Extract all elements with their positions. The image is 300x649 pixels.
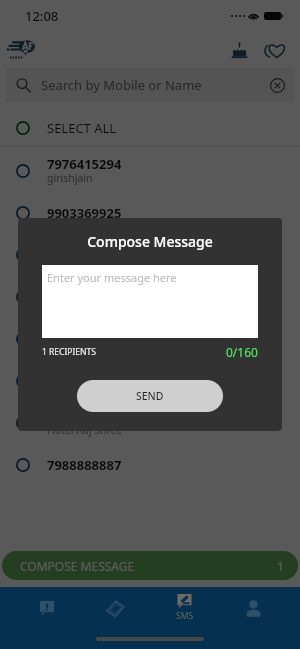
staticText: 9461016573 bbox=[47, 365, 122, 383]
button[interactable]: SMS bbox=[150, 587, 219, 629]
staticText: Tulsi Leaf bbox=[47, 381, 93, 395]
staticText: Search by Mobile or Name bbox=[41, 76, 202, 94]
staticText: 9414047812 bbox=[47, 281, 122, 299]
staticText: 9829080854 bbox=[47, 239, 122, 257]
button[interactable]: 9460701284 bbox=[0, 402, 300, 444]
staticText: Sanjay Ji bbox=[47, 255, 88, 269]
staticText: Enter your message here bbox=[47, 270, 177, 285]
staticText: 7976415294 bbox=[47, 155, 122, 173]
button[interactable]: 7976415294 bbox=[0, 150, 300, 192]
staticText: 12:08 bbox=[25, 7, 59, 25]
staticText: 9829060333 bbox=[47, 323, 122, 341]
staticText: SMS bbox=[176, 610, 194, 622]
button[interactable]: COMPOSE MESSAGE bbox=[2, 551, 298, 580]
staticText: girishjain bbox=[47, 171, 93, 185]
button[interactable]: Enter your message here bbox=[42, 265, 258, 338]
button[interactable]: Offers bbox=[81, 587, 150, 629]
staticText: 7988888887 bbox=[47, 456, 122, 474]
button[interactable]: SEND bbox=[77, 380, 223, 412]
staticText: 9903369925 bbox=[47, 204, 122, 222]
staticText: Hotel Raj Shree bbox=[47, 423, 123, 437]
staticText: SEND bbox=[136, 389, 164, 403]
staticText: surrender bbox=[47, 339, 97, 353]
staticText: 0/160 bbox=[226, 344, 258, 360]
button[interactable]: Profile bbox=[219, 587, 288, 629]
staticText: 1 bbox=[277, 558, 284, 574]
staticText: SELECT ALL bbox=[47, 119, 117, 137]
staticText: 1 RECIPIENTS bbox=[42, 346, 96, 358]
staticText: COMPOSE MESSAGE bbox=[20, 558, 135, 574]
staticText: 9460701284 bbox=[47, 407, 122, 425]
button[interactable]: 9461016573 bbox=[0, 360, 300, 402]
button[interactable]: Clear search bbox=[262, 70, 292, 100]
staticText: Compose Message bbox=[18, 232, 282, 251]
button[interactable]: 9414047812 bbox=[0, 276, 300, 318]
button[interactable]: 7988888887 bbox=[0, 444, 300, 486]
button[interactable]: Favourites bbox=[260, 35, 290, 65]
button[interactable]: 9903369925 bbox=[0, 192, 300, 234]
button[interactable]: Alerts bbox=[13, 587, 81, 629]
button[interactable]: 9829080854 bbox=[0, 234, 300, 276]
button[interactable]: SELECT ALL bbox=[0, 110, 300, 146]
button[interactable]: 9829060333 bbox=[0, 318, 300, 360]
button[interactable]: Search by Mobile or Name bbox=[6, 68, 294, 102]
button[interactable]: Birthdays bbox=[224, 35, 254, 65]
